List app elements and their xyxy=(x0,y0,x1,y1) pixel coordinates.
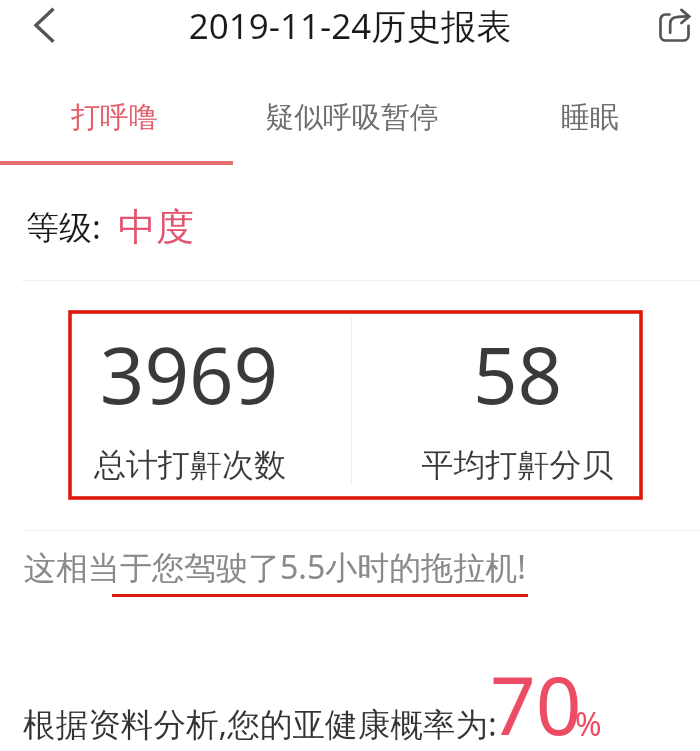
staticText: 2019-11-24历史报表 xyxy=(0,2,700,50)
staticText: 睡眠 xyxy=(561,99,619,136)
staticText: 平均打鼾分贝 xyxy=(355,445,680,485)
staticText: 这相当于您驾驶了5.5小时的拖拉机! xyxy=(24,545,526,589)
staticText: 根据资料分析,您的亚健康概率为: xyxy=(23,701,497,746)
staticText: 总计打鼾次数 xyxy=(0,445,380,485)
button[interactable]: 疑似呼吸暂停 xyxy=(233,86,471,148)
button[interactable]: Back xyxy=(16,0,72,54)
staticText: 打呼噜 xyxy=(71,99,158,136)
staticText: 中度 xyxy=(118,203,194,251)
staticText: % xyxy=(575,702,602,746)
staticText: 疑似呼吸暂停 xyxy=(265,99,439,136)
button[interactable]: 打呼噜 xyxy=(0,86,233,148)
staticText: 等级: xyxy=(26,204,101,249)
button[interactable]: 睡眠 xyxy=(471,86,700,148)
staticText: 3969 xyxy=(0,321,378,427)
staticText: 58 xyxy=(355,321,680,427)
button[interactable]: Share xyxy=(656,7,696,47)
staticText: 70 xyxy=(490,649,582,751)
